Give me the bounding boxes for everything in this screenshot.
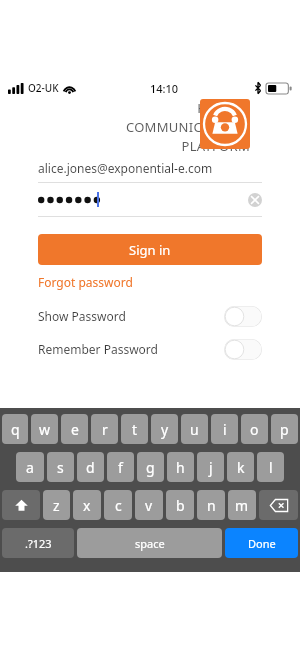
button[interactable]: k (227, 452, 254, 482)
staticText: O2-UK (28, 81, 59, 95)
staticText: p (280, 420, 289, 439)
staticText: f (118, 458, 123, 477)
staticText: c (115, 496, 122, 515)
staticText: a (26, 458, 34, 477)
button[interactable]: x (73, 490, 101, 520)
button[interactable]: s (47, 452, 74, 482)
staticText: z (53, 496, 60, 515)
button[interactable]: Show Password (38, 304, 262, 328)
staticText: Sign in (129, 241, 171, 259)
staticText: Forgot password (38, 274, 133, 290)
staticText: PLATFORM (181, 137, 250, 155)
button[interactable]: g (137, 452, 164, 482)
staticText: .?123 (25, 536, 52, 551)
button[interactable]: t (121, 414, 148, 444)
staticText: y (161, 420, 169, 439)
staticText: i (223, 420, 227, 439)
staticText: Done (248, 536, 276, 551)
button[interactable]: Backspace (259, 490, 298, 520)
button[interactable]: c (104, 490, 132, 520)
button[interactable]: l (257, 452, 284, 482)
button[interactable]: d (77, 452, 104, 482)
staticText: COMMUNICATIONS (125, 118, 250, 136)
staticText: d (86, 458, 95, 477)
staticText: w (39, 420, 51, 439)
staticText: j (209, 458, 213, 477)
button[interactable]: Forgot password (38, 274, 133, 290)
button[interactable]: Remember Password (38, 337, 262, 361)
staticText: alice.jones@exponential-e.com (38, 160, 213, 176)
button[interactable]: j (197, 452, 224, 482)
staticText: x (83, 496, 91, 515)
staticText: 14:10 (150, 81, 179, 96)
staticText: v (145, 496, 153, 515)
staticText: u (190, 420, 199, 439)
staticText: n (207, 496, 216, 515)
button[interactable]: v (135, 490, 163, 520)
staticText: k (237, 458, 245, 477)
staticText: t (132, 420, 138, 439)
button[interactable]: h (167, 452, 194, 482)
staticText: HOSTED (197, 99, 250, 117)
button[interactable]: e (61, 414, 88, 444)
button[interactable]: b (166, 490, 194, 520)
button[interactable]: u (181, 414, 208, 444)
staticText: h (176, 458, 185, 477)
button[interactable]: p (271, 414, 298, 444)
button[interactable]: Sign in (38, 234, 262, 265)
button[interactable]: Done (225, 528, 298, 558)
button[interactable]: r (91, 414, 118, 444)
staticText: q (11, 420, 20, 439)
staticText: b (176, 496, 185, 515)
button[interactable]: Shift (2, 490, 40, 520)
staticText: Remember Password (38, 341, 158, 357)
staticText: e (71, 420, 79, 439)
button[interactable]: f (107, 452, 134, 482)
staticText: l (269, 458, 273, 477)
button[interactable]: w (31, 414, 58, 444)
staticText: s (57, 458, 64, 477)
button[interactable]: n (197, 490, 225, 520)
button[interactable]: y (151, 414, 178, 444)
staticText: g (146, 458, 155, 477)
staticText: r (102, 420, 108, 439)
button[interactable]: m (228, 490, 256, 520)
staticText: Show Password (38, 308, 126, 324)
button[interactable]: o (241, 414, 268, 444)
button[interactable]: q (2, 414, 28, 444)
button[interactable]: a (16, 452, 44, 482)
staticText: o (250, 420, 259, 439)
button[interactable]: Clear password (248, 193, 262, 207)
button[interactable]: z (43, 490, 70, 520)
staticText: m (235, 496, 249, 515)
button[interactable]: i (211, 414, 238, 444)
staticText: space (135, 536, 165, 551)
button[interactable]: .?123 (2, 528, 74, 558)
button[interactable]: space (77, 528, 222, 558)
